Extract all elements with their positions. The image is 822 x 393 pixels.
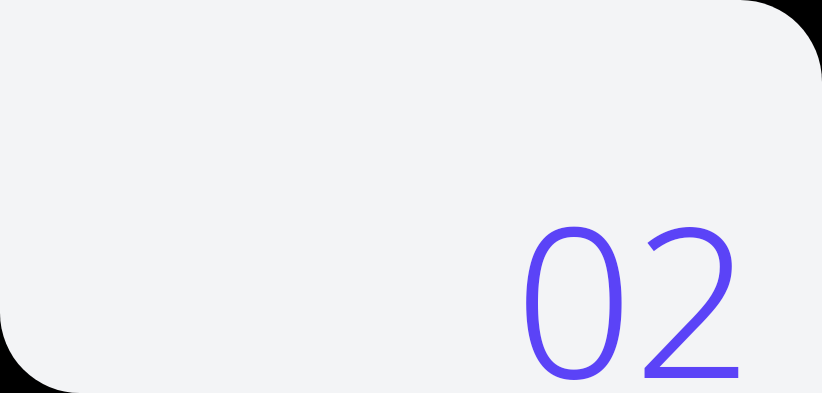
button[interactable]: Step 02 panel	[0, 0, 822, 393]
staticText: 02	[514, 156, 752, 393]
